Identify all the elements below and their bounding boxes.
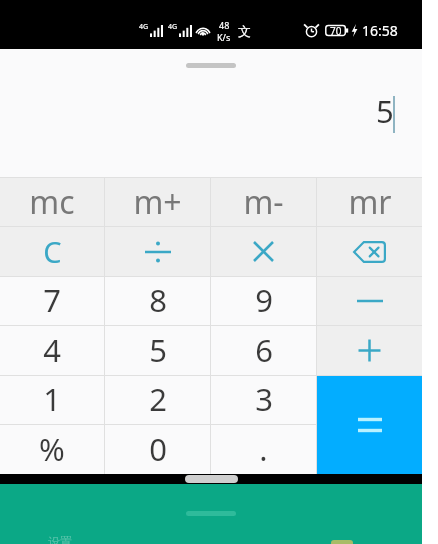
staticText: 48 — [219, 19, 230, 31]
staticText: 5 — [149, 329, 167, 371]
staticText: 70 — [330, 24, 342, 37]
button[interactable]: m- — [211, 178, 316, 226]
button[interactable]: Equals — [317, 376, 422, 474]
staticText: . — [259, 428, 268, 470]
staticText: C — [43, 232, 62, 271]
button[interactable]: 7 — [0, 277, 104, 325]
staticText: 5 — [376, 90, 394, 132]
staticText: m+ — [133, 180, 182, 224]
staticText: m- — [243, 180, 284, 224]
staticText: % — [39, 428, 65, 470]
staticText: K/s — [217, 31, 231, 43]
staticText: 2 — [149, 378, 167, 420]
button[interactable]: Backspace — [317, 227, 422, 276]
button[interactable]: 1 — [0, 376, 104, 424]
button[interactable]: mr — [317, 178, 422, 226]
staticText: 4 — [43, 329, 61, 371]
button[interactable]: 9 — [211, 277, 316, 325]
staticText: 4G — [168, 22, 178, 32]
staticText: 8 — [149, 279, 167, 321]
staticText: mc — [29, 180, 75, 224]
button[interactable]: 4 — [0, 326, 104, 375]
button[interactable]: Minus — [317, 277, 422, 325]
button[interactable]: 6 — [211, 326, 316, 375]
button[interactable]: % — [0, 425, 104, 474]
button[interactable]: 8 — [105, 277, 210, 325]
button[interactable]: 5 — [105, 326, 210, 375]
staticText: 6 — [255, 329, 273, 371]
staticText: 3 — [255, 378, 273, 420]
button[interactable]: Multiply — [211, 227, 316, 276]
button[interactable]: mc — [0, 178, 104, 226]
button[interactable]: 0 — [105, 425, 210, 474]
button[interactable]: C — [0, 227, 104, 276]
staticText: mr — [348, 180, 392, 224]
staticText: 文 — [238, 23, 251, 39]
button[interactable]: 2 — [105, 376, 210, 424]
staticText: 设置 — [48, 534, 72, 544]
staticText: 0 — [149, 428, 167, 470]
staticText: 1 — [43, 378, 61, 420]
staticText: 9 — [255, 279, 273, 321]
button[interactable]: 3 — [211, 376, 316, 424]
staticText: 7 — [43, 279, 61, 321]
staticText: 16:58 — [362, 21, 398, 40]
staticText: 4G — [139, 22, 149, 32]
button[interactable]: Plus — [317, 326, 422, 375]
button[interactable]: Divide — [105, 227, 210, 276]
button[interactable]: . — [211, 425, 316, 474]
button[interactable]: m+ — [105, 178, 210, 226]
